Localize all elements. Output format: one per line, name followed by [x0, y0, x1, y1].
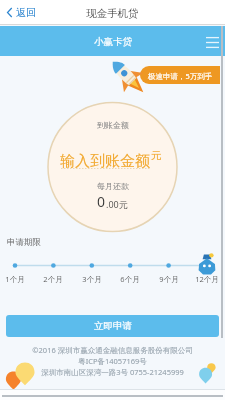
- staticText: 每月还款: [97, 181, 129, 191]
- staticText: 2个月: [43, 274, 63, 284]
- staticText: 9个月: [159, 274, 179, 284]
- staticText: 1个月: [5, 274, 25, 284]
- staticText: 返回: [16, 6, 36, 19]
- button[interactable]: 9个月: [156, 274, 182, 284]
- button[interactable]: 2个月: [40, 274, 66, 284]
- staticText: 6个月: [120, 274, 140, 284]
- staticText: 元: [151, 149, 162, 162]
- staticText: 现金手机贷: [86, 7, 139, 20]
- staticText: .00元: [106, 198, 128, 210]
- staticText: 小赢卡贷: [94, 36, 132, 48]
- button[interactable]: Back: [4, 2, 39, 23]
- button[interactable]: 6个月: [117, 274, 143, 284]
- staticText: 3个月: [82, 274, 102, 284]
- staticText: 立即申请: [94, 320, 132, 332]
- staticText: 极速申请，5万到手: [148, 71, 213, 81]
- staticText: 0: [97, 192, 106, 211]
- staticText: 12个月: [195, 274, 219, 284]
- button[interactable]: 1个月: [2, 274, 28, 284]
- staticText: 粤ICP备14057169号: [78, 356, 147, 366]
- staticText: 深圳市南山区深湾一路3号 0755-21245999: [41, 367, 184, 377]
- button[interactable]: 12个月: [194, 274, 220, 284]
- staticText: 输入到账金额: [60, 152, 150, 171]
- staticText: 申请期限: [7, 237, 41, 248]
- button[interactable]: 3个月: [79, 274, 105, 284]
- staticText: ©2016 深圳市赢众通金融信息服务股份有限公司: [32, 345, 193, 355]
- button[interactable]: Menu: [203, 33, 221, 51]
- button[interactable]: 立即申请: [6, 315, 219, 337]
- staticText: 到账金额: [97, 120, 129, 130]
